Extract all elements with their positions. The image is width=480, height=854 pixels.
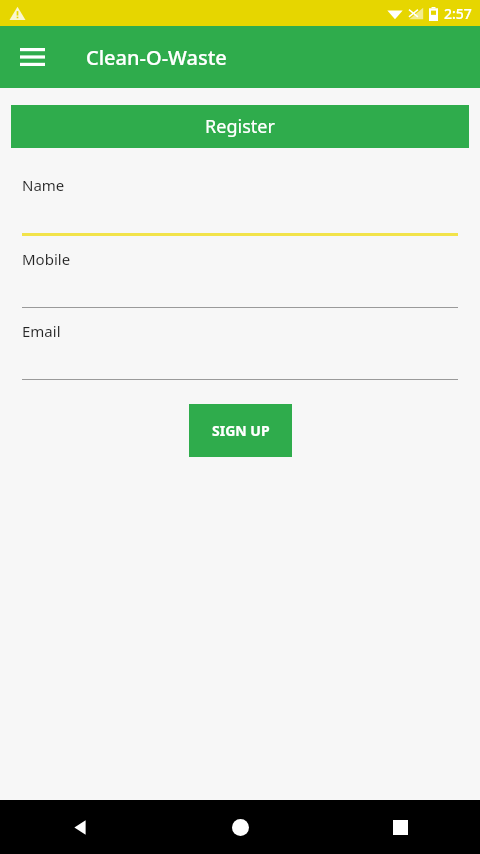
staticText: Register — [205, 114, 275, 139]
button[interactable]: Name — [22, 162, 458, 236]
button[interactable]: Back — [0, 800, 160, 854]
button[interactable]: Register — [11, 105, 469, 148]
staticText: Name — [22, 175, 65, 195]
button[interactable]: Recent apps — [320, 800, 480, 854]
button[interactable]: Home — [160, 800, 320, 854]
button[interactable]: SIGN UP — [189, 404, 292, 457]
staticText: 2:57 — [444, 4, 472, 23]
staticText: Clean-O-Waste — [86, 44, 227, 71]
button[interactable]: Mobile — [22, 236, 458, 308]
button[interactable]: Email — [22, 308, 458, 380]
staticText: SIGN UP — [212, 421, 270, 440]
staticText: Mobile — [22, 249, 71, 269]
button[interactable]: Open navigation menu — [8, 33, 56, 81]
staticText: Email — [22, 321, 61, 341]
